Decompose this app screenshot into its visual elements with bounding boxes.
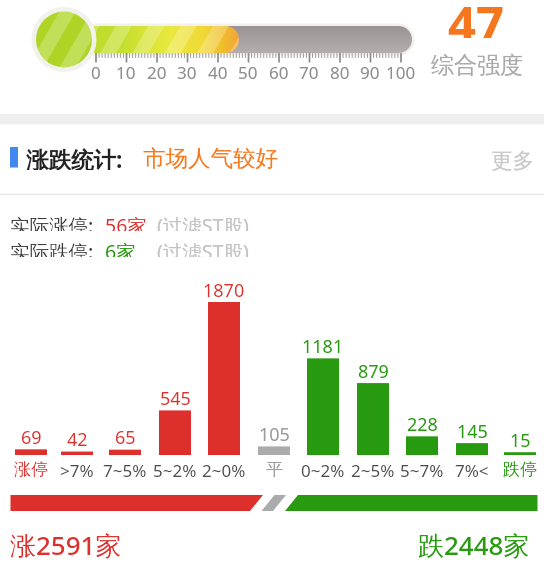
staticText: 42	[67, 427, 88, 448]
button[interactable]: 更多	[491, 147, 541, 171]
staticText: 47	[448, 0, 505, 38]
staticText: 40	[208, 61, 228, 79]
staticText: 0~2%	[301, 459, 345, 480]
staticText: 5~2%	[153, 459, 197, 480]
staticText: 5~7%	[400, 459, 444, 480]
staticText: 涨2591家	[10, 527, 122, 559]
staticText: 平	[266, 459, 283, 480]
staticText: 65	[115, 425, 136, 446]
staticText: 56家	[105, 212, 147, 231]
staticText: 实际涨停:	[10, 212, 94, 231]
staticText: 20	[147, 61, 167, 79]
staticText: 90	[360, 61, 380, 79]
staticText: 跌停	[503, 459, 537, 480]
staticText: (过滤ST股)	[157, 212, 249, 231]
staticText: 60	[269, 61, 289, 79]
staticText: 涨跌统计:	[26, 144, 123, 170]
staticText: 100	[386, 61, 416, 79]
staticText: 70	[299, 61, 319, 79]
staticText: 105	[259, 422, 290, 443]
staticText: 50	[238, 61, 258, 79]
staticText: 7~5%	[103, 459, 147, 480]
staticText: >7%	[60, 459, 94, 480]
staticText: 15	[510, 428, 531, 449]
staticText: 跌2448家	[418, 527, 530, 559]
staticText: 10	[116, 61, 136, 79]
staticText: 更多	[491, 147, 534, 171]
staticText: 69	[21, 425, 42, 446]
staticText: (过滤ST股)	[157, 238, 249, 257]
staticText: 545	[160, 386, 191, 407]
staticText: 6家	[105, 238, 136, 257]
staticText: 1181	[302, 334, 344, 355]
staticText: 1870	[203, 278, 245, 299]
staticText: 实际跌停:	[10, 238, 94, 257]
staticText: 涨停	[14, 459, 48, 480]
staticText: 0	[91, 61, 101, 79]
staticText: 145	[457, 419, 488, 440]
staticText: 228	[407, 412, 438, 433]
staticText: 2~5%	[351, 459, 395, 480]
staticText: 综合强度	[431, 51, 523, 77]
staticText: 80	[330, 61, 350, 79]
staticText: 30	[177, 61, 197, 79]
staticText: 2~0%	[202, 459, 246, 480]
staticText: 7%<	[455, 459, 489, 480]
staticText: 市场人气较好	[143, 144, 278, 170]
staticText: 879	[358, 359, 389, 380]
